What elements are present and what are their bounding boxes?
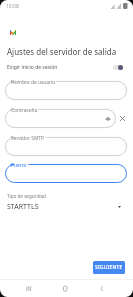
staticText: Servidor SMTP (11, 135, 44, 142)
staticText: Exigir inicio de sesión (7, 64, 58, 71)
button[interactable]: Tipo de seguridad (0, 191, 133, 214)
staticText: Puerto (11, 162, 27, 169)
staticText: Ajustes del servidor de salida (7, 46, 117, 57)
staticText: Contraseña (11, 107, 38, 114)
staticText: STARTTLS (7, 202, 39, 212)
button[interactable]: Exigir inicio de sesión (0, 60, 133, 74)
button[interactable]: SIGUIENTE (93, 261, 125, 274)
button[interactable]: Inicio (57, 280, 75, 297)
button[interactable]: Exigir inicio de sesión (112, 63, 124, 72)
staticText: 10:08 (6, 3, 19, 10)
staticText: Tipo de seguridad (7, 193, 46, 199)
button[interactable]: Mostrar contraseña (103, 114, 113, 124)
button[interactable]: Recientes (20, 280, 38, 297)
button[interactable]: Atrás (94, 280, 112, 297)
staticText: Nombre de usuario (11, 79, 56, 86)
staticText: SIGUIENTE (95, 264, 123, 271)
button[interactable]: Borrar (116, 112, 128, 124)
